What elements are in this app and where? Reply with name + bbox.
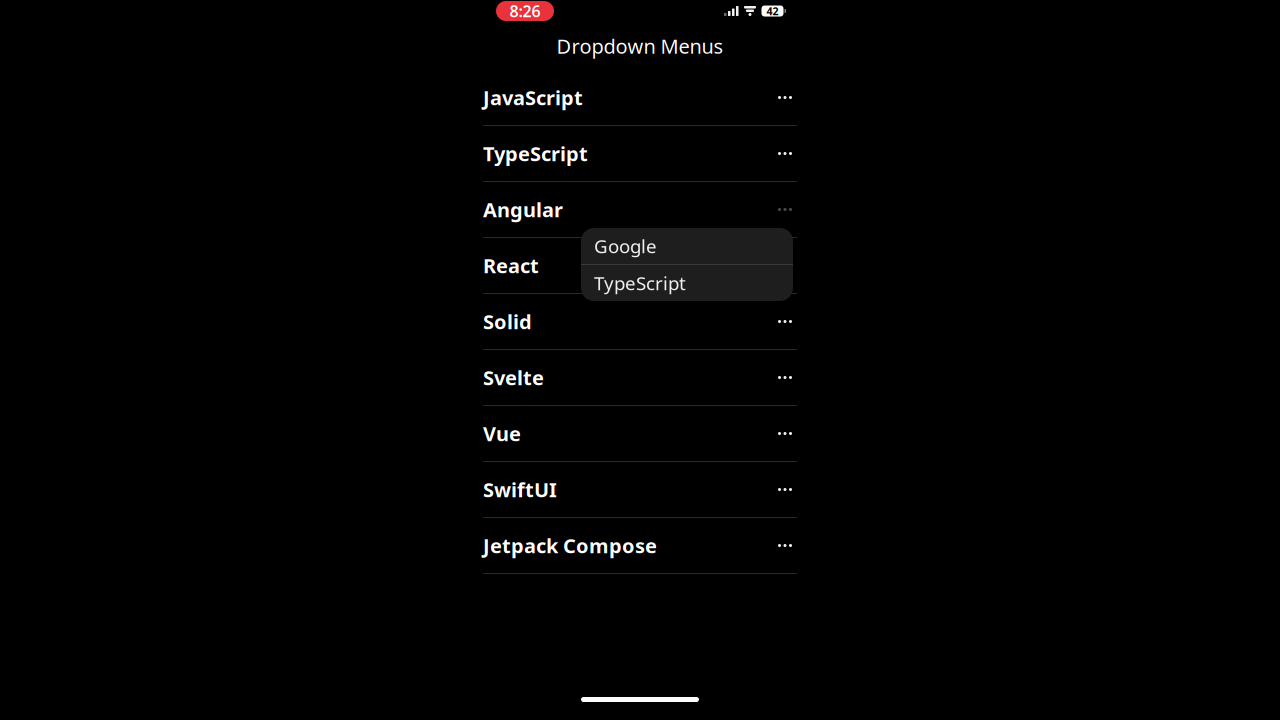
staticText: Svelte — [483, 364, 544, 391]
staticText: SwiftUI — [483, 476, 557, 503]
button[interactable]: Svelte — [483, 350, 797, 406]
staticText: JavaScript — [483, 84, 583, 111]
button[interactable]: SwiftUI — [483, 462, 797, 518]
button[interactable]: TypeScript — [483, 126, 797, 182]
button[interactable]: Angular — [483, 182, 797, 238]
staticText: Jetpack Compose — [483, 532, 657, 559]
button[interactable]: TypeScript — [581, 265, 793, 301]
staticText: Dropdown Menus — [556, 33, 723, 59]
button[interactable]: Jetpack Compose — [483, 518, 797, 574]
staticText: React — [483, 252, 539, 279]
staticText: TypeScript — [594, 271, 686, 295]
button[interactable]: Vue — [483, 406, 797, 462]
button[interactable]: Google — [581, 228, 793, 264]
staticText: Google — [594, 234, 657, 258]
staticText: Vue — [483, 420, 521, 447]
staticText: Angular — [483, 196, 563, 223]
staticText: TypeScript — [483, 140, 588, 167]
staticText: Solid — [483, 308, 532, 335]
staticText: 8:26 — [509, 0, 540, 22]
button[interactable]: React — [483, 238, 797, 294]
button[interactable]: JavaScript — [483, 70, 797, 126]
button[interactable]: Solid — [483, 294, 797, 350]
staticText: 42 — [766, 4, 778, 18]
